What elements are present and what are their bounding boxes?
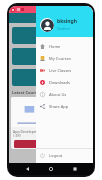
staticText: Share App — [49, 104, 69, 109]
staticText: Downloads — [49, 80, 70, 85]
button[interactable]: Live Classes — [36, 64, 93, 76]
button[interactable]: Buy Now — [14, 140, 88, 148]
button[interactable]: My Courses — [36, 52, 93, 64]
button[interactable]: About Us — [36, 88, 93, 100]
button[interactable]: Share App — [36, 100, 93, 112]
button[interactable]: Home — [36, 40, 93, 52]
staticText: App Development — [13, 129, 43, 134]
button[interactable]: Downloads — [36, 76, 93, 88]
staticText: Live Classes — [49, 68, 72, 73]
button[interactable]: My Courses — [12, 27, 90, 44]
staticText: Home — [49, 44, 61, 49]
staticText: Free Classes — [41, 79, 62, 84]
button[interactable]: bksingh — [36, 6, 93, 37]
staticText: Student — [57, 26, 70, 31]
button[interactable]: Free Classes — [12, 69, 90, 86]
staticText: ₹ 499 — [13, 134, 21, 138]
button[interactable]: All Courses — [12, 48, 90, 65]
staticText: All Courses — [42, 58, 61, 63]
button[interactable]: Logout — [36, 149, 93, 161]
staticText: My Courses — [49, 56, 71, 61]
staticText: About Us — [49, 92, 67, 97]
button[interactable]: Recent apps — [70, 164, 80, 174]
button[interactable]: Home — [46, 164, 56, 174]
staticText: bksingh — [57, 18, 77, 25]
staticText: Latest Courses — [12, 90, 42, 95]
button[interactable]: Back — [23, 164, 33, 174]
button[interactable]: App Development — [11, 97, 91, 149]
staticText: Logout — [49, 153, 63, 158]
